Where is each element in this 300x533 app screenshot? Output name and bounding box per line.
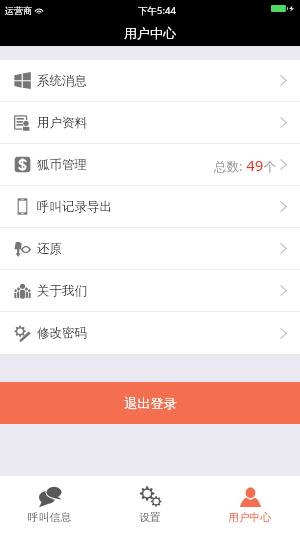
button[interactable]: 呼叫记录导出 <box>0 186 300 227</box>
staticText: 关于我们 <box>37 283 87 299</box>
staticText: 用户资料 <box>37 115 87 131</box>
button[interactable]: 设置 <box>100 476 200 533</box>
staticText: 用户中心 <box>228 511 272 525</box>
staticText: 呼叫记录导出 <box>37 199 112 215</box>
button[interactable]: 用户中心 <box>200 476 300 533</box>
staticText: 用户中心 <box>124 25 176 41</box>
staticText: 设置 <box>139 511 161 525</box>
staticText: 下午5:44 <box>138 4 176 17</box>
button[interactable]: 退出登录 <box>0 382 300 424</box>
staticText: 退出登录 <box>124 395 177 412</box>
staticText: 狐币管理 <box>37 157 87 173</box>
button[interactable]: 狐币管理 <box>0 144 300 185</box>
staticText: 呼叫信息 <box>28 511 72 525</box>
button[interactable]: 关于我们 <box>0 270 300 311</box>
staticText: 系统消息 <box>37 73 87 89</box>
staticText: 总数: 49个 <box>214 155 276 175</box>
button[interactable]: 还原 <box>0 228 300 269</box>
button[interactable]: 系统消息 <box>0 60 300 101</box>
staticText: 运营商 <box>5 5 32 16</box>
button[interactable]: 呼叫信息 <box>0 476 100 533</box>
staticText: 还原 <box>37 241 62 257</box>
button[interactable]: 修改密码 <box>0 312 300 354</box>
button[interactable]: 用户资料 <box>0 102 300 143</box>
staticText: 修改密码 <box>37 325 87 341</box>
